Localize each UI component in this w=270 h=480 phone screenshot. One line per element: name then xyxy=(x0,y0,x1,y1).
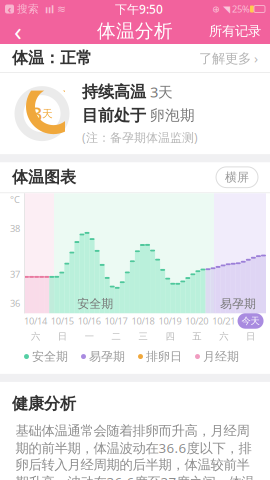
staticText: ⊕ ◥ 25% xyxy=(212,3,250,15)
staticText: 日 xyxy=(246,331,255,342)
staticText: 六 xyxy=(31,331,40,342)
staticText: 月经期 xyxy=(203,349,239,364)
staticText: 目前处于 xyxy=(82,106,146,125)
staticText: 二 xyxy=(112,331,121,342)
staticText: (注：备孕期体温监测) xyxy=(82,129,198,145)
staticText: 安全期 xyxy=(77,296,113,311)
staticText: 体温：正常 xyxy=(12,48,92,68)
staticText: 五 xyxy=(192,331,201,342)
staticText: 天 xyxy=(42,107,53,120)
staticText: 体温图表 xyxy=(12,167,76,187)
staticText: 10/20 xyxy=(185,315,208,327)
staticText: 持续高温 xyxy=(82,82,146,102)
button[interactable]: 返回 xyxy=(0,18,36,44)
staticText: 安全期 xyxy=(32,349,68,364)
staticText: 三 xyxy=(138,331,147,342)
staticText: 卵泡期 xyxy=(146,106,195,124)
staticText: 10/17 xyxy=(105,315,128,327)
staticText: 10/14 xyxy=(24,315,47,327)
staticText: 38 xyxy=(10,222,20,235)
staticText: 了解更多 › xyxy=(199,49,258,67)
staticText: ııl xyxy=(39,2,57,16)
staticText: ≋ xyxy=(57,3,66,15)
staticText: 今天 xyxy=(242,315,260,327)
staticText: 体温分析 xyxy=(97,19,173,42)
staticText: 10/19 xyxy=(158,315,181,327)
staticText: 横屏 xyxy=(225,170,249,185)
staticText: 一 xyxy=(85,331,94,342)
staticText: 下午9:50 xyxy=(115,1,163,17)
staticText: 10/18 xyxy=(131,315,154,327)
staticText: 四 xyxy=(165,331,174,342)
staticText: ‹ xyxy=(7,2,11,16)
staticText: 37 xyxy=(10,268,20,280)
staticText: 3 xyxy=(31,100,42,127)
staticText: 基础体温通常会随着排卵而升高，月经周期的前半期，体温波动在36.6度以下，排卵后… xyxy=(15,423,254,480)
staticText: ‹ xyxy=(14,14,22,48)
staticText: 排卵日 xyxy=(146,349,182,364)
button[interactable]: 体温：正常 xyxy=(0,44,270,72)
staticText: 10/16 xyxy=(78,315,101,327)
button[interactable]: 所有记录 xyxy=(200,18,270,44)
staticText: 10/21 xyxy=(212,315,235,327)
staticText: 搜索 xyxy=(14,2,39,15)
staticText: 六 xyxy=(219,331,228,342)
staticText: 10/15 xyxy=(51,315,74,327)
staticText: 易孕期 xyxy=(220,296,256,311)
staticText: 健康分析 xyxy=(12,394,76,414)
staticText: 所有记录 xyxy=(209,23,261,39)
staticText: °C xyxy=(10,193,20,206)
staticText: 易孕期 xyxy=(89,349,125,364)
staticText: 3天 xyxy=(146,82,173,102)
staticText: 36 xyxy=(10,297,20,309)
staticText: 日 xyxy=(58,331,67,342)
button[interactable]: 横屏 xyxy=(216,167,258,188)
